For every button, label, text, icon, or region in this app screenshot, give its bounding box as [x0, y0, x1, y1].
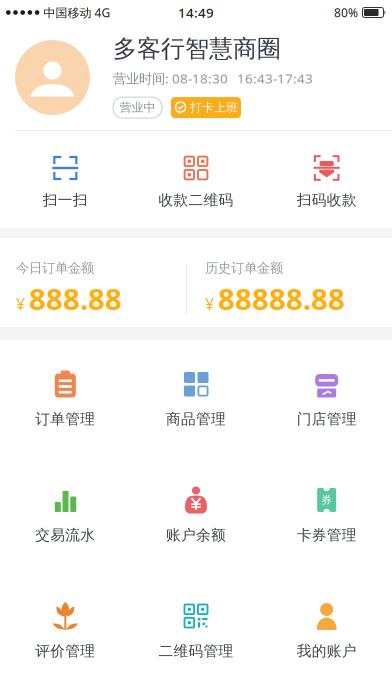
staticText: 14:49 [178, 4, 214, 21]
staticText: 打卡上班 [190, 100, 238, 115]
button[interactable]: 交易流水 [0, 456, 131, 572]
staticText: 历史订单金额 [205, 260, 283, 276]
staticText: 收款二维码 [158, 191, 233, 209]
staticText: 扫一扫 [43, 191, 88, 209]
staticText: 账户余额 [166, 526, 226, 544]
staticText: 80% [334, 4, 358, 20]
staticText: 扫码收款 [297, 191, 357, 209]
button[interactable]: 扫码收款 [261, 131, 392, 228]
staticText: 今日订单金额 [16, 260, 94, 276]
staticText: ¥ [205, 293, 214, 314]
button[interactable]: 订单管理 [0, 340, 131, 456]
staticText: 券 [321, 493, 332, 506]
button[interactable]: 账户余额 [131, 456, 261, 572]
button[interactable]: 门店管理 [261, 340, 392, 456]
button[interactable]: 二维码管理 [131, 572, 261, 688]
button[interactable]: 扫一扫 [0, 131, 131, 228]
staticText: ¥ [16, 293, 25, 314]
staticText: 卡券管理 [297, 526, 357, 544]
button[interactable]: 打卡上班 [171, 97, 241, 118]
button[interactable]: 商品管理 [131, 340, 261, 456]
staticText: 多客行智慧商圈 [113, 34, 281, 63]
staticText: 商品管理 [166, 410, 226, 428]
button[interactable]: 我的账户 [261, 572, 392, 688]
staticText: 我的账户 [297, 642, 357, 660]
staticText: 中国移动 4G [43, 4, 110, 20]
staticText: 二维码管理 [158, 642, 233, 660]
staticText: 88888.88 [218, 279, 345, 318]
button[interactable]: 评价管理 [0, 572, 131, 688]
staticText: 交易流水 [35, 526, 95, 544]
staticText: 订单管理 [35, 410, 95, 428]
staticText: 营业中 [119, 100, 155, 115]
button[interactable]: 收款二维码 [131, 131, 261, 228]
button[interactable]: 券 [261, 456, 392, 572]
staticText: 评价管理 [35, 642, 95, 660]
staticText: 营业时间: 08-18:30 16:43-17:43 [113, 69, 313, 87]
staticText: 888.88 [29, 279, 122, 318]
staticText: 门店管理 [297, 410, 357, 428]
